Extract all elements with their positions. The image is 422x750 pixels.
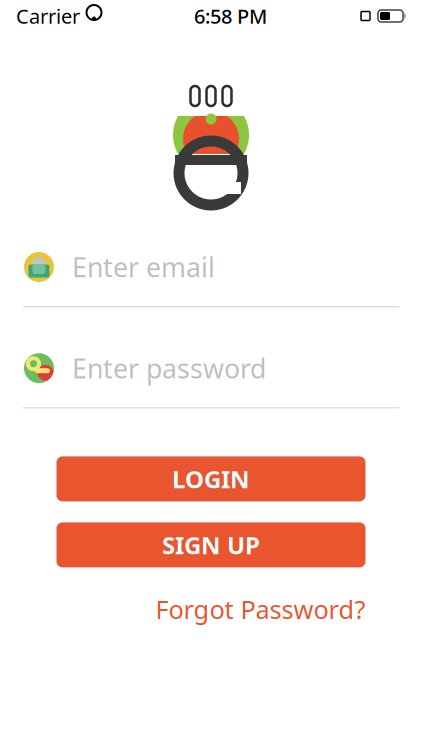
button[interactable]: SIGN UP <box>56 522 365 567</box>
staticText: Enter password <box>72 350 266 386</box>
staticText: 6:58 PM <box>194 3 267 29</box>
staticText: LOGIN <box>172 463 250 495</box>
staticText: Forgot Password? <box>155 592 365 626</box>
button[interactable]: LOGIN <box>56 456 365 501</box>
staticText: Enter email <box>72 249 215 285</box>
button[interactable]: Forgot Password? <box>155 588 365 630</box>
staticText: Carrier <box>16 3 80 29</box>
button[interactable]: Enter email <box>0 244 422 307</box>
staticText: SIGN UP <box>162 529 260 561</box>
button[interactable]: Enter password <box>0 345 422 408</box>
